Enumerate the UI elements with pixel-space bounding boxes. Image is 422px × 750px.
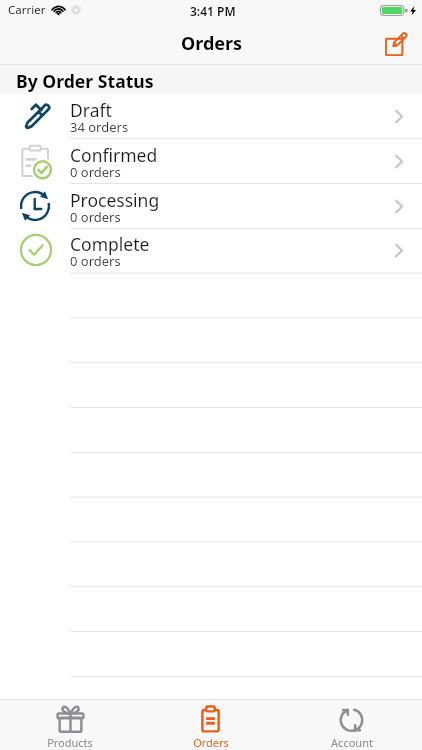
button[interactable]: Processing — [0, 184, 422, 229]
staticText: By Order Status — [16, 69, 154, 93]
staticText: Complete — [70, 232, 150, 256]
staticText: Confirmed — [70, 143, 158, 167]
staticText: 34 orders — [70, 118, 129, 136]
staticText: 0 orders — [70, 163, 121, 181]
staticText: 0 orders — [70, 208, 121, 226]
staticText: Products — [47, 735, 93, 750]
staticText: Orders — [193, 735, 229, 750]
button[interactable]: Account — [281, 699, 422, 750]
button[interactable]: Draft — [0, 94, 422, 139]
staticText: 3:41 PM — [190, 3, 236, 19]
button[interactable]: Complete — [0, 228, 422, 273]
staticText: Orders — [181, 31, 243, 56]
button[interactable]: Products — [0, 699, 140, 750]
staticText: Carrier — [8, 2, 46, 18]
staticText: Account — [331, 735, 373, 750]
staticText: 0 orders — [70, 252, 121, 270]
staticText: Processing — [70, 188, 160, 212]
button[interactable]: Compose new order — [378, 25, 416, 63]
staticText: Draft — [70, 98, 112, 122]
button[interactable]: Orders — [140, 699, 281, 750]
button[interactable]: Confirmed — [0, 139, 422, 184]
